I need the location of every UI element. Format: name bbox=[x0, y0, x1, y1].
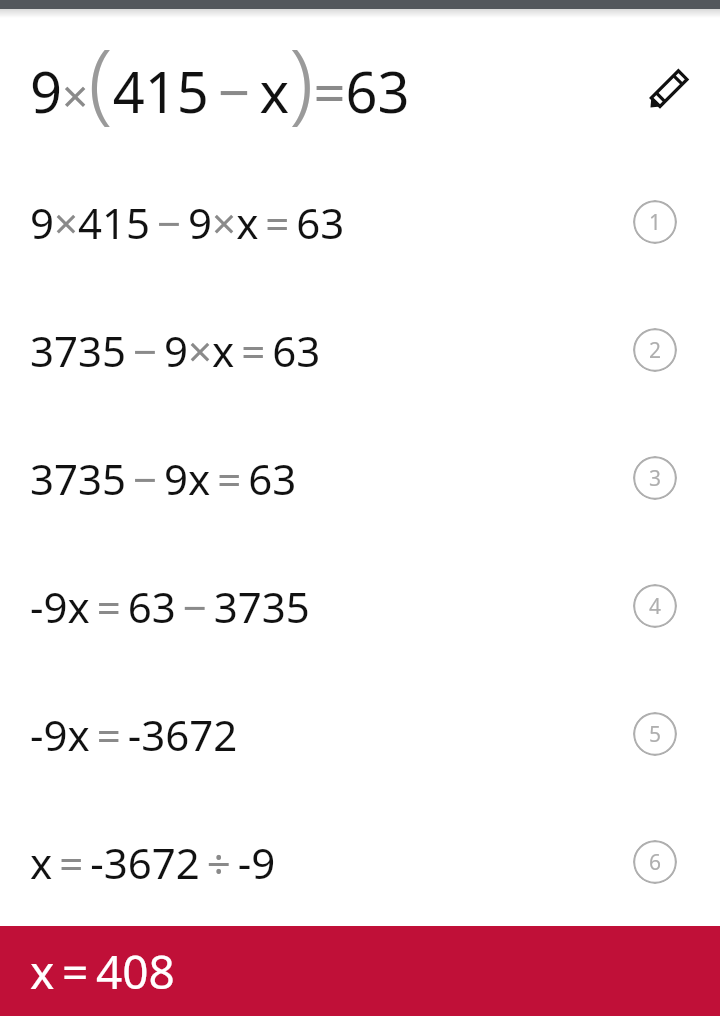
button[interactable]: -9x = -3672 bbox=[0, 670, 720, 798]
staticText: 4 bbox=[649, 592, 662, 621]
staticText: 5 bbox=[649, 720, 662, 749]
button[interactable]: Step 6 bbox=[633, 840, 677, 884]
staticText: 3 bbox=[649, 464, 662, 493]
staticText: 9×(415 − x)=63 bbox=[30, 19, 410, 139]
button[interactable]: 3735 − 9×x = 63 bbox=[0, 286, 720, 414]
staticText: x = -3672 ÷ -9 bbox=[30, 834, 276, 891]
button[interactable]: x = 408 bbox=[0, 926, 720, 1016]
button[interactable]: -9x = 63 − 3735 bbox=[0, 542, 720, 670]
button[interactable]: Step 3 bbox=[633, 456, 677, 500]
button[interactable]: 9×415 − 9×x = 63 bbox=[0, 158, 720, 286]
staticText: x = 408 bbox=[30, 940, 175, 1003]
staticText: 6 bbox=[649, 848, 662, 877]
button[interactable]: Step 4 bbox=[633, 584, 677, 628]
button[interactable]: x = -3672 ÷ -9 bbox=[0, 798, 720, 926]
button[interactable]: Step 2 bbox=[633, 328, 677, 372]
staticText: 3735 − 9×x = 63 bbox=[30, 322, 321, 379]
button[interactable]: Step 5 bbox=[633, 712, 677, 756]
button[interactable]: 3735 − 9x = 63 bbox=[0, 414, 720, 542]
staticText: 1 bbox=[649, 208, 662, 237]
button[interactable]: Step 1 bbox=[633, 200, 677, 244]
staticText: -9x = -3672 bbox=[30, 706, 238, 763]
staticText: -9x = 63 − 3735 bbox=[30, 578, 310, 635]
staticText: 2 bbox=[649, 336, 662, 365]
staticText: 9×415 − 9×x = 63 bbox=[30, 194, 345, 251]
button[interactable]: Edit equation bbox=[642, 60, 698, 116]
staticText: 3735 − 9x = 63 bbox=[30, 450, 297, 507]
